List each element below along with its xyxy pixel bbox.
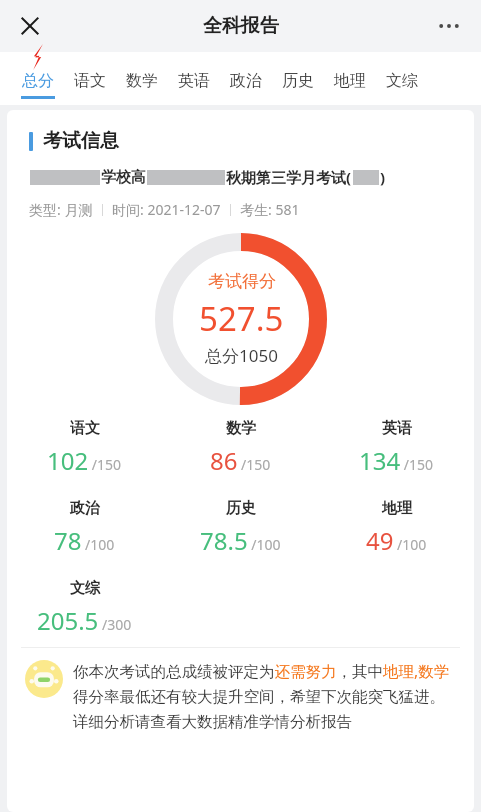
staticText: 政治 (70, 499, 100, 518)
staticText: 总分 (22, 71, 54, 91)
staticText: 205.5 /300 (37, 604, 132, 637)
staticText: 数学 (126, 71, 158, 91)
staticText: 语文 (74, 71, 106, 91)
staticText: 总分1050 (205, 344, 278, 367)
staticText: 86 /150 (210, 444, 271, 477)
staticText: 地理 (382, 499, 412, 518)
staticText: 历史 (282, 71, 314, 91)
button[interactable]: 语文 (64, 52, 116, 105)
staticText: 地理 (334, 71, 366, 91)
button[interactable]: 英语 (168, 52, 220, 105)
staticText: 78.5 /100 (200, 524, 281, 557)
button[interactable]: 地理 (324, 52, 376, 105)
staticText: 49 /100 (366, 524, 427, 557)
button[interactable]: 文综 (376, 52, 428, 105)
staticText: 考生: 581 (240, 200, 300, 219)
staticText: 英语 (382, 419, 412, 438)
button[interactable]: 历史 (272, 52, 324, 105)
staticText: 语文 (70, 419, 100, 438)
staticText: 学校高 (101, 168, 146, 187)
button[interactable]: 数学 (116, 52, 168, 105)
staticText: 政治 (230, 71, 262, 91)
staticText: 134 /150 (359, 444, 434, 477)
staticText: 英语 (178, 71, 210, 91)
button[interactable]: More options (427, 4, 471, 48)
staticText: 你本次考试的总成绩被评定为还需努力，其中地理,数学得分率最低还有较大提升空间，希… (73, 660, 460, 731)
staticText: 时间: 2021-12-07 (112, 200, 221, 219)
staticText: 527.5 (199, 296, 284, 341)
staticText: 102 /150 (47, 444, 122, 477)
staticText: 78 /100 (54, 524, 115, 557)
staticText: 历史 (226, 499, 256, 518)
staticText: 文综 (386, 71, 418, 91)
staticText: 文综 (70, 579, 100, 598)
staticText: 全科报告 (203, 14, 279, 38)
staticText: 类型: 月测 (29, 200, 93, 219)
button[interactable]: Close (8, 4, 52, 48)
staticText: 考试得分 (208, 271, 276, 292)
staticText: 考试信息 (43, 129, 119, 153)
button[interactable]: 政治 (220, 52, 272, 105)
button[interactable]: 总分 (12, 52, 64, 105)
staticText: ) (380, 167, 386, 187)
staticText: 数学 (226, 419, 256, 438)
staticText: 秋期第三学月考试( (226, 167, 352, 187)
